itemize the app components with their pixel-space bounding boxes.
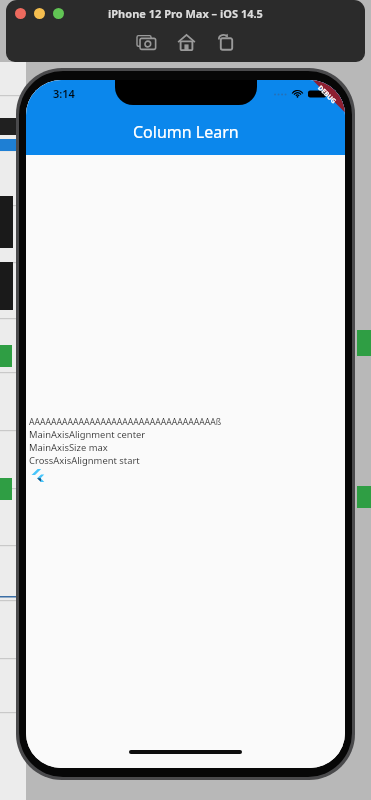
staticText: AAAAAAAAAAAAAAAAAAAAAAAAAAAAAAAAAAß <box>29 416 222 428</box>
button[interactable] <box>15 8 26 19</box>
button[interactable] <box>53 8 64 19</box>
button[interactable] <box>34 8 45 19</box>
staticText: DEBUG <box>316 83 339 106</box>
button[interactable]: Home <box>172 28 200 56</box>
button[interactable]: Rotate <box>212 28 240 56</box>
staticText: MainAxisAlignment center <box>29 428 146 441</box>
staticText: 3:14 <box>53 86 75 101</box>
button[interactable]: Screenshot <box>132 28 160 56</box>
staticText: iPhone 12 Pro Max – iOS 14.5 <box>108 6 263 21</box>
staticText: Column Learn <box>133 121 239 143</box>
staticText: CrossAxisAlignment start <box>29 454 140 467</box>
staticText: MainAxisSize max <box>29 441 108 454</box>
